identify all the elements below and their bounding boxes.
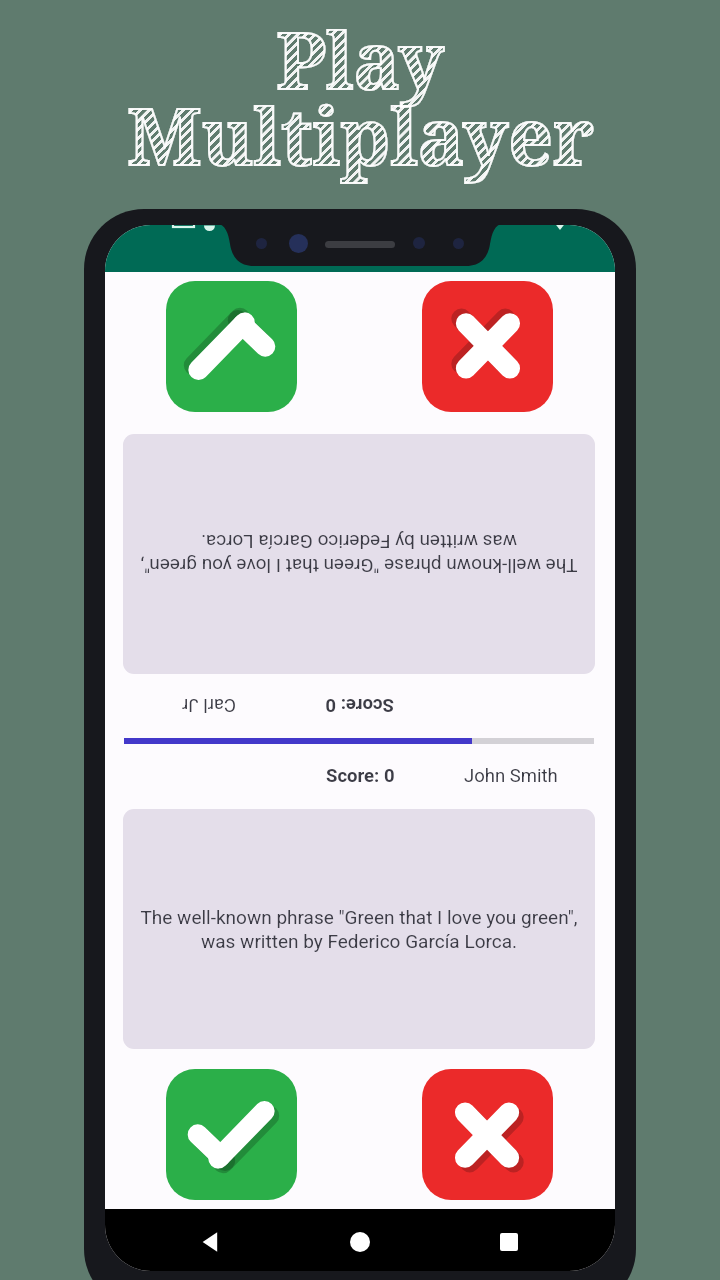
staticText: Score: 0 [326,765,395,787]
button[interactable]: Accept [166,281,297,412]
staticText: The well-known phrase "Green that I love… [129,531,589,577]
staticText: Score: 0 [325,694,394,716]
button[interactable]: Home [350,1232,370,1252]
staticText: The well-known phrase "Green that I love… [129,906,589,952]
button[interactable]: The well-known phrase "Green that I love… [123,434,595,674]
staticText: Play [276,6,444,112]
button[interactable]: Reject [422,281,553,412]
staticText: Carl Jr [182,694,236,716]
staticText: Play [276,6,444,112]
button[interactable]: Accept [166,1069,297,1200]
button[interactable]: Back [200,1231,222,1253]
button[interactable]: The well-known phrase "Green that I love… [123,809,595,1049]
staticText: Multiplayer [127,82,594,188]
button[interactable]: Recents [500,1233,518,1251]
staticText: Multiplayer [127,82,594,188]
button[interactable]: Reject [422,1069,553,1200]
staticText: John Smith [464,765,558,787]
